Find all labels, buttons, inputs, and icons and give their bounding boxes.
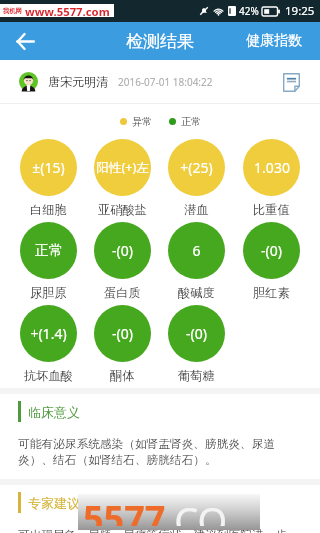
staticText: www.5577.com	[25, 4, 110, 17]
staticText: 异常	[132, 115, 152, 128]
staticText: 可能有泌尿系统感染（如肾盂肾炎、膀胱炎、尿道炎）、结石（如肾结石、膀胱结石）。	[18, 437, 282, 468]
staticText: 6	[192, 241, 201, 260]
button[interactable]: 阳性(+)左	[85, 139, 159, 222]
staticText: 抗坏血酸	[24, 368, 73, 383]
staticText: +(1.4)	[30, 324, 67, 343]
staticText: 正常	[181, 115, 201, 128]
button[interactable]: 1.030	[234, 139, 309, 222]
staticText: 比重值	[253, 202, 290, 217]
staticText: -(0)	[261, 241, 282, 260]
staticText: 酸碱度	[178, 285, 215, 300]
button[interactable]: -(0)	[85, 222, 159, 305]
staticText: -(0)	[186, 324, 207, 343]
button[interactable]: +(25)	[159, 139, 234, 222]
button[interactable]: 返回	[0, 22, 50, 60]
staticText: 葡萄糖	[178, 368, 215, 383]
button[interactable]: 健康指数	[236, 22, 320, 60]
staticText: 亚硝酸盐	[98, 202, 147, 217]
button[interactable]: 唐宋元明清	[0, 60, 320, 103]
staticText: 潜血	[184, 202, 209, 217]
staticText: 专家建议	[28, 495, 80, 511]
staticText: 5577	[83, 494, 166, 526]
button[interactable]: 查看报告	[278, 69, 304, 95]
staticText: 蛋白质	[104, 285, 141, 300]
staticText: 胆红素	[253, 285, 290, 300]
button[interactable]: -(0)	[234, 222, 309, 305]
staticText: 可出现尿急、尿频、尿痛等症状，建议到医院进一步检查确诊。	[18, 528, 296, 533]
button[interactable]: 正常	[11, 222, 85, 305]
staticText: 酮体	[110, 368, 135, 383]
staticText: 尿胆原	[30, 285, 67, 300]
staticText: 健康指数	[246, 32, 302, 50]
staticText: 19:25	[285, 3, 315, 19]
staticText: 2016-07-01 18:04:22	[118, 75, 213, 89]
button[interactable]: 6	[159, 222, 234, 305]
staticText: 白细胞	[30, 202, 67, 217]
staticText: +(25)	[180, 158, 213, 177]
staticText: 1.030	[254, 158, 290, 177]
staticText: -(0)	[112, 241, 133, 260]
button[interactable]: +(1.4)	[11, 305, 85, 388]
staticText: -(0)	[112, 324, 133, 343]
staticText: 阳性(+)左	[96, 159, 149, 176]
staticText: 正常	[35, 242, 63, 260]
staticText: .COM	[166, 494, 260, 526]
staticText: 临床意义	[28, 404, 80, 420]
staticText: ±(15)	[32, 158, 65, 177]
staticText: 唐宋元明清	[48, 74, 108, 89]
button[interactable]: -(0)	[159, 305, 234, 388]
staticText: 检测结果	[126, 31, 194, 52]
button[interactable]: -(0)	[85, 305, 159, 388]
button[interactable]: ±(15)	[11, 139, 85, 222]
staticText: 42%	[239, 4, 259, 18]
staticText: 我机网	[3, 7, 22, 15]
